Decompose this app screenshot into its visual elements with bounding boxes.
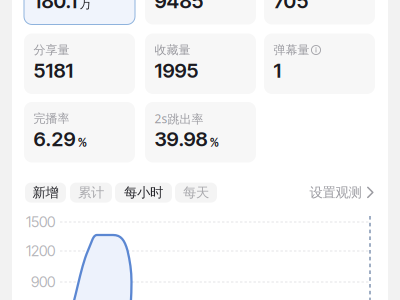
button[interactable]: 弹幕量 [264, 33, 375, 94]
staticText: 39.98 [154, 127, 207, 151]
staticText: % [209, 135, 219, 150]
button[interactable]: 累计 [70, 183, 112, 203]
button[interactable]: 设置观测 [309, 184, 374, 201]
staticText: 新增 [32, 184, 58, 201]
staticText: 2s跳出率 [154, 110, 203, 126]
staticText: 万 [79, 0, 91, 12]
staticText: 6.29 [33, 127, 75, 151]
button[interactable]: 2s跳出率 [145, 102, 256, 162]
button[interactable]: 每小时 [115, 183, 172, 203]
staticText: 1995 [154, 58, 198, 83]
button[interactable]: 播放量 [24, 0, 135, 24]
staticText: 每小时 [124, 184, 163, 201]
button[interactable]: 新增 [25, 183, 66, 203]
staticText: 1 [273, 58, 281, 83]
staticText: 1500 [26, 213, 55, 231]
staticText: 705 [273, 0, 308, 13]
button[interactable]: 评论量 [264, 0, 375, 24]
button[interactable]: 分享量 [24, 33, 135, 94]
staticText: 收藏量 [154, 43, 190, 57]
staticText: % [77, 135, 87, 150]
button[interactable]: 点赞量 [145, 0, 256, 24]
button[interactable]: 每天 [175, 183, 217, 203]
staticText: 1200 [26, 242, 55, 260]
staticText: 完播率 [33, 111, 69, 126]
button[interactable]: 完播率 [24, 102, 135, 162]
button[interactable]: 收藏量 [145, 33, 256, 94]
staticText: 9485 [154, 0, 203, 13]
staticText: 设置观测 [309, 184, 361, 201]
staticText: 5181 [33, 58, 73, 83]
staticText: 累计 [78, 184, 104, 201]
staticText: 弹幕量 [273, 43, 309, 57]
staticText: 分享量 [33, 43, 69, 57]
staticText: 180.1 [33, 0, 77, 13]
staticText: 每天 [183, 184, 209, 201]
staticText: 900 [31, 273, 55, 291]
